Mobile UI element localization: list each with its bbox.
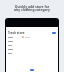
button[interactable] <box>8 35 56 39</box>
staticText: Quickly add store for any clothing categ… <box>0 4 64 12</box>
button[interactable]: Add <box>52 32 56 34</box>
button[interactable] <box>8 39 56 43</box>
button[interactable] <box>8 43 56 47</box>
button[interactable] <box>8 51 56 55</box>
staticText: Track store <box>8 31 25 35</box>
button[interactable] <box>8 47 56 51</box>
button[interactable]: Continue <box>30 69 34 71</box>
